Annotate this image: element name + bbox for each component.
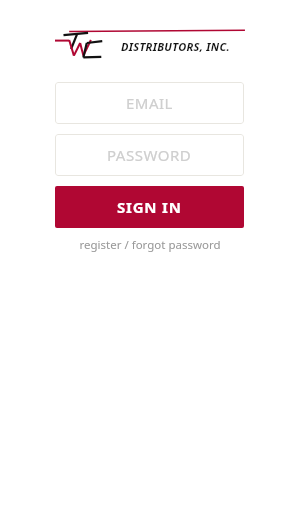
button[interactable]: SIGN IN xyxy=(55,186,244,228)
staticText: register / forgot password xyxy=(79,237,221,253)
button[interactable]: PASSWORD xyxy=(55,134,244,176)
staticText: DISTRIBUTORS, INC. xyxy=(121,39,230,54)
button[interactable]: register / forgot password xyxy=(55,237,244,253)
button[interactable]: EMAIL xyxy=(55,82,244,124)
staticText: EMAIL xyxy=(126,93,173,113)
staticText: SIGN IN xyxy=(117,197,182,217)
staticText: PASSWORD xyxy=(107,145,192,165)
